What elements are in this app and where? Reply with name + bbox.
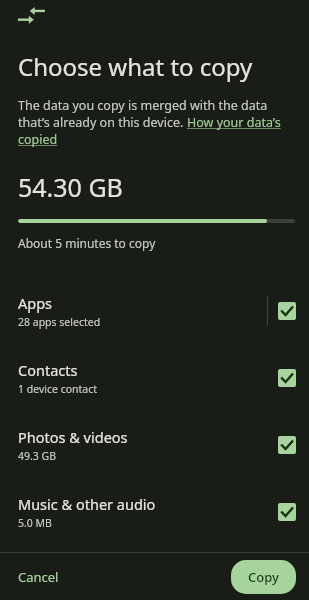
button[interactable]: Toggle Apps	[278, 302, 296, 320]
button[interactable]: Apps	[0, 277, 309, 344]
staticText: Cancel	[18, 568, 59, 586]
staticText: 54.30 GB	[18, 170, 123, 204]
button[interactable]: Toggle Music & other audio	[278, 503, 296, 521]
button[interactable]: Copy	[231, 560, 296, 594]
button[interactable]: Music & other audio	[0, 478, 309, 545]
staticText: that’s already on this device.	[18, 114, 187, 131]
staticText: 49.3 GB	[18, 449, 57, 463]
button[interactable]: Photos & videos	[0, 411, 309, 478]
other: Transfer data	[18, 6, 45, 25]
staticText: Copy	[248, 568, 279, 586]
staticText: Choose what to copy	[18, 50, 253, 83]
button[interactable]: Toggle Photos & videos	[278, 436, 296, 454]
staticText: 28 apps selected	[18, 315, 101, 329]
staticText: Photos & videos	[18, 427, 128, 447]
button[interactable]: Cancel	[8, 561, 69, 593]
staticText: About 5 minutes to copy	[18, 235, 156, 251]
staticText: Contacts	[18, 360, 78, 380]
staticText: The data you copy is merged with the dat…	[18, 97, 268, 114]
button[interactable]: Toggle Contacts	[278, 369, 296, 387]
staticText: 5.0 MB	[18, 516, 52, 530]
staticText: 1 device contact	[18, 382, 98, 396]
staticText: Apps	[18, 293, 53, 313]
button[interactable]: How your data’s	[187, 114, 281, 131]
button[interactable]: Contacts	[0, 344, 309, 411]
button[interactable]: copied	[18, 131, 58, 148]
staticText: Music & other audio	[18, 494, 156, 514]
